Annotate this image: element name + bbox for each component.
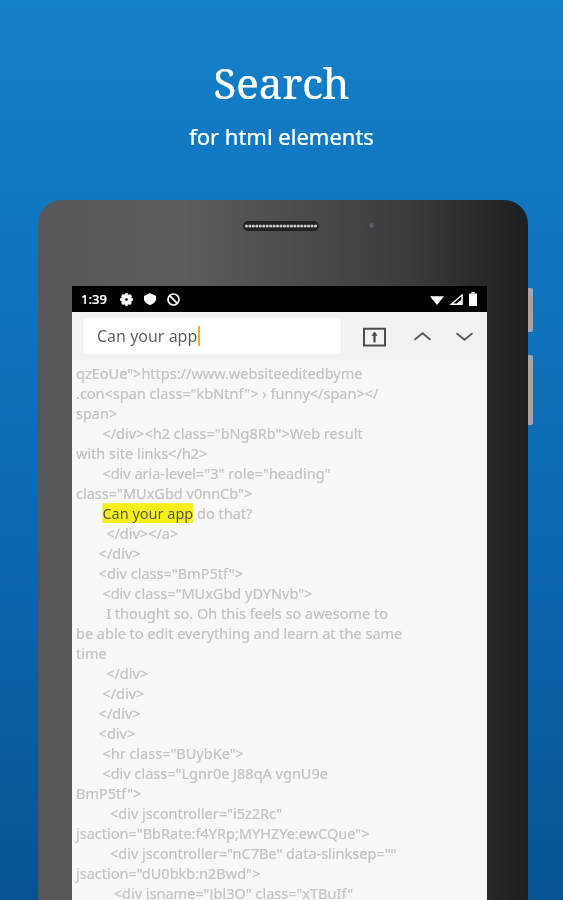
staticText: <div jscontroller="i5z2Rc" (76, 803, 283, 823)
staticText: <div aria-level="3" role="heading" (76, 463, 331, 483)
staticText: <div class="Lgnr0e J88qA vgnU9e (76, 763, 328, 783)
staticText: <hr class="BUybKe"> (76, 743, 244, 763)
staticText: Can your app do that? (76, 503, 253, 523)
staticText: </div> (76, 703, 141, 723)
staticText: </div><h2 class="bNg8Rb">Web result (76, 423, 363, 443)
staticText: qzEoUe">https://www.websiteeditedbyme (76, 363, 363, 383)
staticText: 1:39 (81, 290, 107, 308)
staticText: be able to edit everything and learn at … (76, 623, 403, 643)
staticText: <div class="MUxGbd yDYNvb"> (76, 583, 313, 603)
staticText: time (76, 643, 107, 663)
button[interactable]: Open in browser (357, 319, 391, 353)
staticText: <div class="BmP5tf"> (76, 563, 243, 583)
button[interactable]: Can your app (83, 318, 341, 354)
staticText: .con<span class="kbNtnf"> › funny</span>… (76, 383, 379, 403)
staticText: </div> (76, 683, 145, 703)
staticText: <div jsname="Jbl3O" class="xTBuIf" (76, 883, 354, 900)
staticText: BmP5tf"> (76, 783, 142, 803)
staticText: Search (213, 54, 350, 111)
staticText: span> (76, 403, 118, 423)
staticText: jsaction="BbRate:f4YRp;MYHZYe:ewCQue"> (76, 823, 370, 843)
button[interactable]: Previous match (405, 319, 439, 353)
staticText: <div> (76, 723, 136, 743)
staticText: I thought so. Oh this feels so awesome t… (76, 603, 388, 623)
staticText: class="MUxGbd v0nnCb"> (76, 483, 253, 503)
staticText: </div> (76, 663, 149, 683)
staticText: for html elements (189, 121, 374, 151)
staticText: <div jscontroller="nC7Be" data-slinksep=… (76, 843, 397, 863)
button[interactable]: Next match (451, 319, 477, 353)
staticText: Can your app (97, 325, 198, 347)
staticText: </div></a> (76, 523, 179, 543)
staticText: with site links</h2> (76, 443, 208, 463)
staticText: jsaction="dU0bkb:n2Bwd"> (76, 863, 261, 883)
staticText: </div> (76, 543, 141, 563)
